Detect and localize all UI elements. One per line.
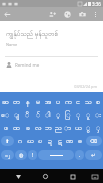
staticText: ↵ [91, 152, 96, 158]
staticText: 03/02/24 pm [0, 84, 97, 89]
staticText: က [65, 97, 72, 107]
button[interactable]: ဖ [0, 121, 11, 134]
staticText: ! [32, 152, 34, 159]
staticText: ကျွန်ုပ်သည် မှန်သူတစ် [6, 29, 59, 39]
button[interactable]: Add person [46, 8, 59, 21]
button[interactable]: ဆ [0, 95, 11, 108]
button[interactable]: ခ [22, 121, 33, 134]
staticText: Remind me [15, 62, 40, 68]
button[interactable]: က [63, 95, 73, 108]
button[interactable]: ် [33, 108, 43, 121]
button[interactable]: အ [43, 95, 53, 108]
button[interactable]: ိ [22, 108, 33, 121]
button[interactable]: မ [33, 95, 43, 108]
button[interactable]: ူ [83, 108, 93, 121]
button[interactable]: Enter [85, 150, 102, 160]
button[interactable]: Symbols [28, 150, 37, 160]
button[interactable]: Recent apps [67, 171, 78, 182]
button[interactable]: း [93, 108, 103, 121]
staticText: ၁၂ [5, 152, 11, 159]
staticText: ထ [13, 123, 20, 133]
staticText: ဓ [78, 136, 82, 146]
button[interactable]: Back [0, 7, 14, 21]
staticText: ှ [96, 123, 101, 133]
button[interactable]: န [22, 95, 33, 108]
button[interactable]: Numbers [1, 150, 14, 160]
button[interactable]: တ [11, 95, 22, 108]
staticText: ဆ [2, 97, 9, 107]
button[interactable]: Switch keyboard [89, 171, 100, 182]
staticText: း [95, 110, 102, 120]
button[interactable]: ှ [93, 121, 103, 134]
staticText: ာ [64, 123, 72, 133]
button[interactable]: Period [75, 150, 84, 160]
button[interactable]: ဍ [45, 136, 55, 146]
button[interactable]: လ [33, 121, 43, 134]
button[interactable]: ့ [53, 108, 63, 121]
staticText: ့ [56, 110, 61, 120]
staticText: ဃ [27, 136, 34, 146]
button[interactable]: More options [90, 9, 101, 20]
button[interactable]: ည [53, 121, 63, 134]
button[interactable]: ယ [73, 121, 83, 134]
staticText: ဎ [38, 136, 42, 146]
staticText: မ [36, 97, 40, 107]
staticText: ယ [75, 123, 82, 133]
staticText: သ [85, 97, 92, 107]
button[interactable]: Back [13, 171, 24, 182]
staticText: ည [55, 123, 62, 133]
button[interactable]: ဃ [25, 136, 35, 146]
button[interactable]: ု [73, 108, 83, 121]
staticText: င [76, 97, 80, 107]
staticText: န [26, 97, 30, 107]
button[interactable]: ပ [53, 95, 63, 108]
button[interactable]: င [73, 95, 83, 108]
staticText: ဘ [45, 123, 52, 133]
button[interactable]: ျ [11, 108, 22, 121]
button[interactable]: ွ [83, 121, 93, 134]
button[interactable]: ါ [43, 108, 53, 121]
button[interactable]: Theme [61, 8, 74, 21]
button[interactable]: ြ [63, 108, 73, 121]
button[interactable]: ဂ [15, 136, 25, 146]
staticText: ူ [86, 110, 91, 120]
staticText: ⬆ [5, 138, 10, 144]
button[interactable]: Space [38, 150, 74, 160]
staticText: ဍ [48, 136, 52, 146]
staticText: ◍ [19, 152, 24, 158]
button[interactable]: ဋ [55, 136, 65, 146]
button[interactable]: ဏ [65, 136, 75, 146]
button[interactable]: ဘ [43, 121, 53, 134]
button[interactable]: ဓ [75, 136, 85, 146]
staticText: . [79, 152, 81, 159]
staticText: အ [45, 97, 52, 107]
staticText: ု [76, 110, 81, 120]
staticText: ါ [45, 110, 51, 120]
button[interactable]: သ [83, 95, 93, 108]
staticText: ခ [26, 123, 30, 133]
staticText: ဋ [58, 136, 62, 146]
button[interactable]: Remind me [0, 62, 103, 68]
staticText: ဏ [66, 136, 74, 146]
staticText: ဖ [4, 123, 8, 133]
staticText: 3:36 [92, 1, 101, 7]
button[interactable]: Backspace [86, 136, 102, 146]
button[interactable]: ာ [63, 121, 73, 134]
staticText: ေ [1, 110, 10, 120]
button[interactable]: Camera [76, 8, 89, 21]
staticText: ပ [56, 97, 60, 107]
staticText: ် [36, 110, 41, 120]
staticText: လ [35, 123, 42, 133]
staticText: ိ [25, 110, 30, 120]
button[interactable]: ထ [11, 121, 22, 134]
button[interactable]: ေ [0, 108, 11, 121]
button[interactable]: ဎ [35, 136, 45, 146]
staticText: ျ [14, 110, 20, 120]
staticText: Name [6, 42, 18, 47]
button[interactable]: စ [93, 95, 103, 108]
staticText: ဂ [18, 136, 22, 146]
button[interactable]: Language [15, 150, 27, 160]
button[interactable]: Home [40, 171, 51, 182]
staticText: ွ [86, 123, 91, 133]
button[interactable]: Shift [1, 136, 14, 146]
